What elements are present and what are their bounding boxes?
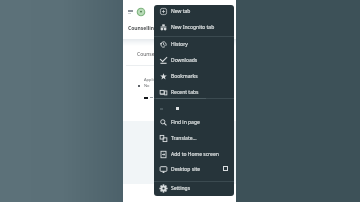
button[interactable]: Recent tabs: [154, 85, 234, 99]
button[interactable]: New Incognito tab: [154, 20, 234, 34]
button[interactable]: New tab: [154, 5, 234, 18]
staticText: New tab: [171, 8, 191, 15]
button[interactable]: Translate...: [154, 131, 234, 145]
button[interactable]: Downloads: [154, 53, 234, 67]
button[interactable]: Desktop site: [154, 162, 234, 176]
button[interactable]: History: [154, 37, 234, 51]
staticText: Add to Home screen: [171, 151, 219, 158]
button[interactable]: Find in page: [154, 115, 234, 129]
staticText: Translate...: [171, 135, 197, 142]
staticText: Applica: [144, 77, 158, 82]
staticText: Recent tabs: [171, 89, 199, 96]
staticText: Bookmarks: [171, 73, 198, 80]
button[interactable]: Add to Home screen: [154, 147, 234, 161]
button[interactable]: Settings: [154, 181, 234, 195]
staticText: History: [171, 41, 188, 48]
staticText: No: [144, 83, 150, 88]
staticText: Desktop site: [171, 166, 201, 173]
staticText: Counselling: [128, 25, 158, 32]
staticText: Counselling: [137, 51, 165, 58]
staticText: New Incognito tab: [171, 24, 215, 31]
button[interactable]: Bookmarks: [154, 69, 234, 83]
staticText: Settings: [171, 185, 191, 192]
staticText: Find in page: [171, 119, 200, 126]
staticText: Downloads: [171, 57, 198, 64]
